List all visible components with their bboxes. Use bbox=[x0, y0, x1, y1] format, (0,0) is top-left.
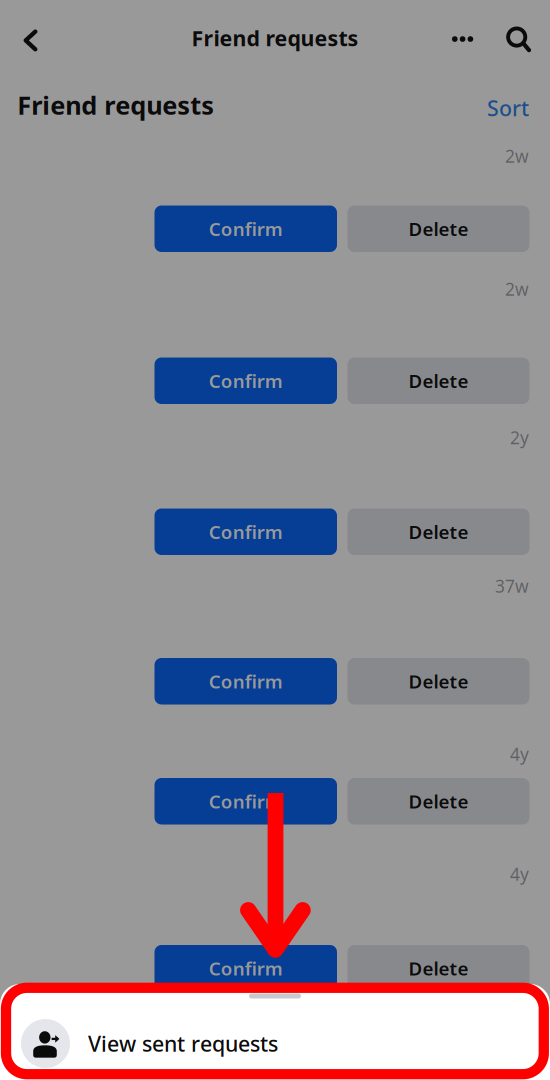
staticText: View sent requests bbox=[88, 1029, 278, 1058]
staticText: Confirm bbox=[209, 789, 283, 814]
button[interactable]: Delete bbox=[347, 357, 529, 404]
staticText: Delete bbox=[408, 669, 468, 694]
staticText: Delete bbox=[408, 956, 468, 981]
button[interactable]: Delete bbox=[347, 508, 529, 555]
button[interactable]: Delete bbox=[347, 945, 529, 991]
button[interactable]: View sent requests bbox=[0, 1010, 550, 1076]
button[interactable]: Delete bbox=[347, 658, 529, 704]
button[interactable]: Confirm bbox=[154, 205, 337, 252]
button[interactable]: Confirm bbox=[154, 508, 337, 555]
staticText: Friend requests bbox=[191, 24, 358, 52]
staticText: 4y bbox=[510, 862, 529, 885]
button[interactable]: More options bbox=[0, 0, 44, 44]
staticText: Confirm bbox=[209, 216, 283, 241]
staticText: Confirm bbox=[209, 956, 283, 981]
button[interactable]: Sort bbox=[481, 95, 529, 121]
staticText: Confirm bbox=[209, 519, 283, 544]
staticText: 2w bbox=[505, 277, 529, 300]
staticText: 4y bbox=[510, 742, 529, 765]
button[interactable]: Back bbox=[0, 0, 48, 48]
button[interactable]: Confirm bbox=[154, 778, 337, 824]
staticText: Friend requests bbox=[17, 88, 214, 122]
staticText: Confirm bbox=[209, 669, 283, 694]
staticText: 2w bbox=[505, 144, 529, 167]
staticText: Delete bbox=[408, 368, 468, 393]
staticText: Confirm bbox=[209, 368, 283, 393]
button[interactable]: Confirm bbox=[154, 357, 337, 404]
button[interactable]: Confirm bbox=[154, 945, 337, 991]
button[interactable]: Search bbox=[0, 0, 46, 48]
staticText: Delete bbox=[408, 789, 468, 814]
staticText: 37w bbox=[495, 574, 529, 597]
button[interactable]: Confirm bbox=[154, 658, 337, 704]
staticText: Sort bbox=[487, 94, 529, 122]
staticText: Delete bbox=[408, 216, 468, 241]
button[interactable]: Delete bbox=[347, 778, 529, 824]
staticText: 2y bbox=[510, 426, 529, 449]
staticText: Delete bbox=[408, 519, 468, 544]
button[interactable]: Delete bbox=[347, 205, 529, 252]
